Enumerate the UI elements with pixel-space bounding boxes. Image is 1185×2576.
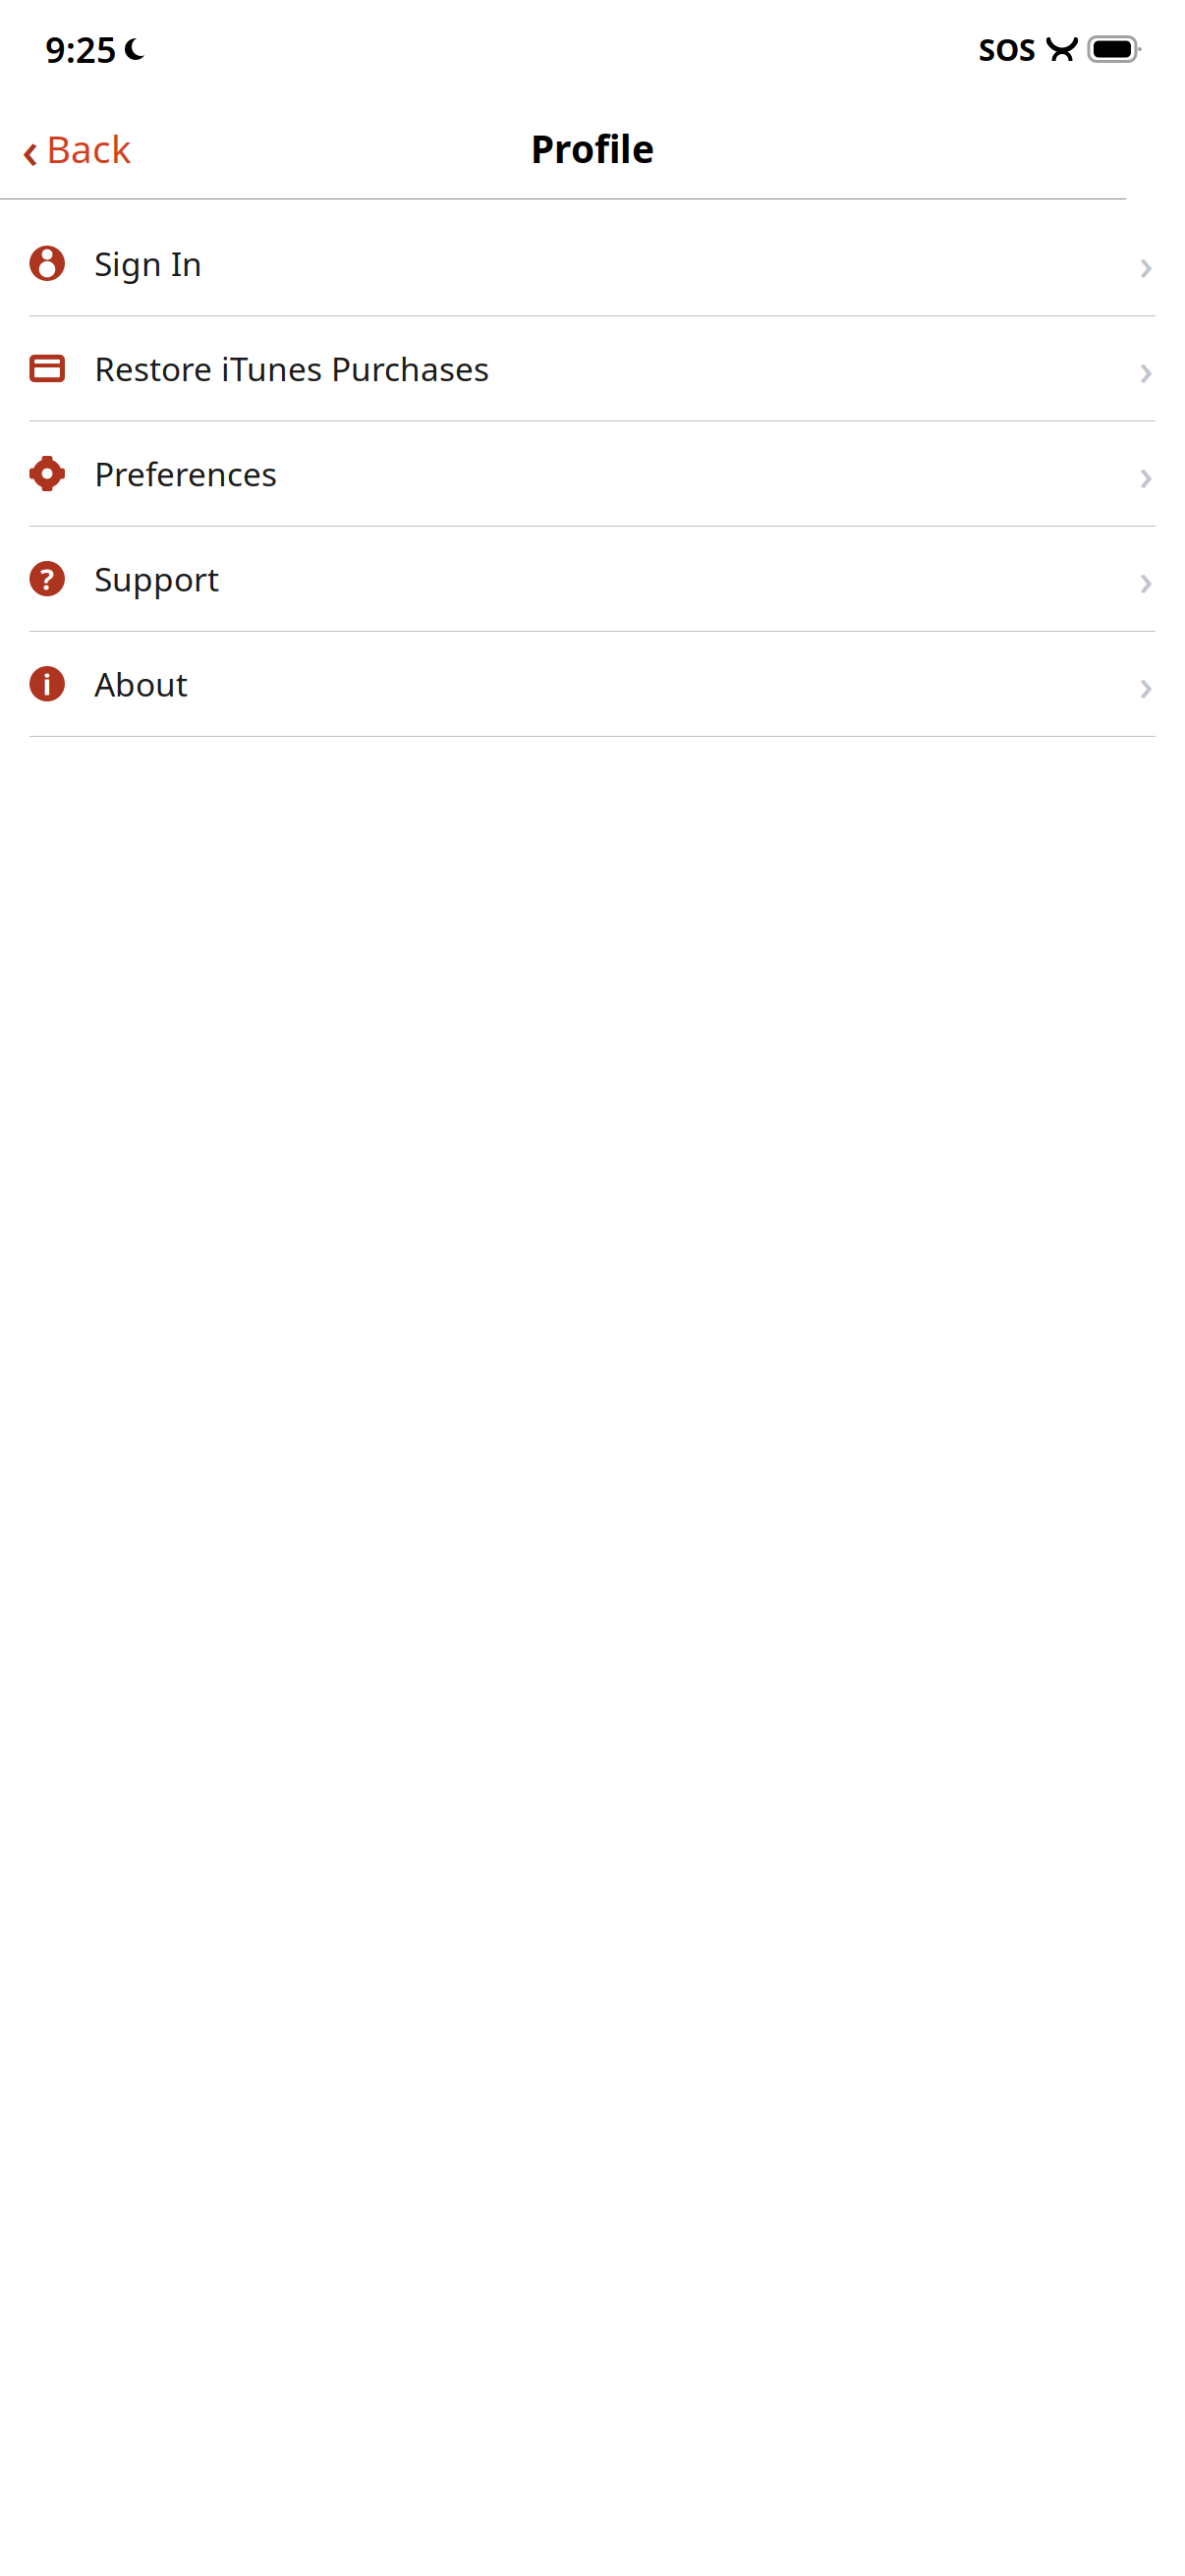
staticText: About (94, 662, 188, 706)
button[interactable]: ? (0, 527, 1185, 632)
staticText: Sign In (94, 242, 202, 285)
button[interactable]: Sign In (0, 211, 1185, 316)
staticText: Profile (531, 123, 654, 174)
staticText: › (1139, 654, 1154, 713)
button[interactable]: Restore iTunes Purchases (0, 316, 1185, 421)
button[interactable]: i (0, 632, 1185, 737)
staticText: › (1139, 444, 1154, 503)
staticText: › (1139, 339, 1154, 398)
staticText: SOS (979, 29, 1036, 69)
staticText: Back (46, 123, 132, 174)
staticText: ? (40, 560, 54, 598)
staticText: ‹ (22, 114, 38, 183)
staticText: Support (94, 557, 219, 600)
staticText: Restore iTunes Purchases (94, 347, 489, 390)
staticText: › (1139, 549, 1154, 608)
staticText: i (43, 665, 52, 703)
staticText: Preferences (94, 452, 277, 495)
button[interactable]: ‹ (0, 107, 145, 190)
staticText: 9:25 (45, 26, 117, 73)
button[interactable]: Preferences (0, 421, 1185, 527)
staticText: › (1139, 234, 1154, 293)
